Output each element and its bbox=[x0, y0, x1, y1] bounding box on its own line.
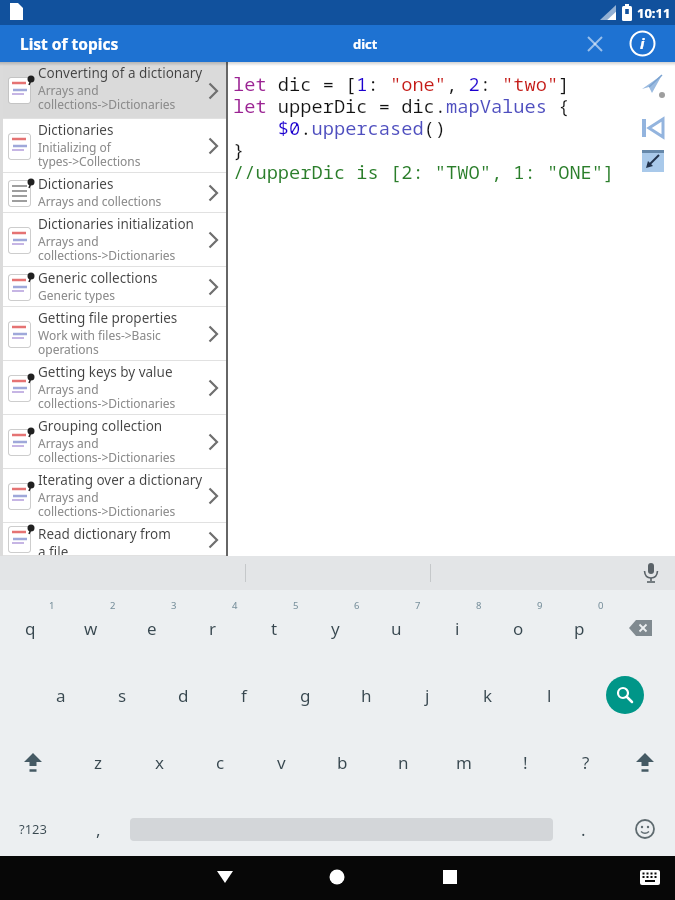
staticText: Getting file properties bbox=[38, 309, 178, 327]
button[interactable]: Converting of a dictionary bbox=[0, 62, 226, 119]
button[interactable]: ! bbox=[503, 745, 547, 779]
staticText: g bbox=[300, 684, 311, 707]
staticText: 9 bbox=[537, 599, 543, 612]
button[interactable] bbox=[635, 753, 655, 772]
button[interactable] bbox=[329, 869, 345, 885]
button[interactable]: i bbox=[435, 611, 479, 645]
button[interactable]: Grouping collection bbox=[0, 415, 226, 469]
button[interactable]: n bbox=[381, 745, 425, 779]
button[interactable] bbox=[640, 870, 660, 885]
button[interactable]: Dictionaries initialization bbox=[0, 213, 226, 267]
button[interactable]: q bbox=[8, 611, 52, 645]
staticText: 8 bbox=[476, 599, 482, 612]
button[interactable]: ?123 bbox=[10, 812, 56, 846]
button[interactable]: a bbox=[39, 678, 83, 712]
staticText: Iterating over a dictionary bbox=[38, 471, 203, 489]
button[interactable]: p bbox=[557, 611, 601, 645]
button[interactable]: Read dictionary from a file bbox=[0, 523, 226, 556]
button[interactable]: i bbox=[629, 30, 656, 57]
staticText: 4 bbox=[232, 599, 238, 612]
button[interactable]: w bbox=[69, 611, 113, 645]
button[interactable]: b bbox=[320, 745, 364, 779]
staticText: Arrays and collections->Dictionaries bbox=[38, 82, 176, 113]
button[interactable]: o bbox=[496, 611, 540, 645]
button[interactable]: Getting file properties bbox=[0, 307, 226, 361]
button[interactable]: Dictionaries bbox=[0, 119, 226, 173]
button[interactable] bbox=[217, 871, 233, 883]
staticText: s bbox=[118, 684, 127, 707]
staticText: t bbox=[271, 617, 278, 640]
button[interactable]: Iterating over a dictionary bbox=[0, 469, 226, 523]
staticText: Arrays and collections->Dictionaries bbox=[38, 435, 176, 466]
staticText: 1 bbox=[49, 599, 55, 612]
button[interactable] bbox=[23, 753, 43, 772]
button[interactable]: z bbox=[76, 745, 120, 779]
staticText: h bbox=[361, 684, 372, 707]
staticText: i bbox=[640, 33, 645, 53]
button[interactable]: f bbox=[222, 678, 266, 712]
button[interactable]: e bbox=[130, 611, 174, 645]
staticText: Arrays and collections->Dictionaries bbox=[38, 381, 176, 412]
button[interactable]: h bbox=[344, 678, 388, 712]
button[interactable]: m bbox=[442, 745, 486, 779]
staticText: 0 bbox=[598, 599, 604, 612]
staticText: Grouping collection bbox=[38, 417, 163, 435]
button[interactable] bbox=[643, 563, 659, 584]
staticText: m bbox=[456, 751, 472, 774]
staticText: 3 bbox=[171, 599, 177, 612]
button[interactable] bbox=[588, 37, 602, 51]
button[interactable]: g bbox=[283, 678, 327, 712]
button[interactable]: , bbox=[76, 812, 120, 846]
button[interactable]: Dictionaries bbox=[0, 173, 226, 213]
button[interactable]: Generic collections bbox=[0, 267, 226, 307]
button[interactable]: c bbox=[198, 745, 242, 779]
staticText: k bbox=[483, 684, 493, 707]
staticText: Dictionaries bbox=[38, 121, 114, 139]
button[interactable] bbox=[641, 117, 665, 139]
button[interactable]: j bbox=[405, 678, 449, 712]
staticText: Dictionaries initialization bbox=[38, 215, 194, 233]
staticText: u bbox=[391, 617, 402, 640]
button[interactable]: d bbox=[161, 678, 205, 712]
button[interactable] bbox=[642, 150, 665, 173]
button[interactable]: r bbox=[191, 611, 235, 645]
staticText: 5 bbox=[293, 599, 299, 612]
button[interactable]: . bbox=[561, 812, 605, 846]
staticText: q bbox=[25, 617, 36, 640]
button[interactable]: y bbox=[313, 611, 357, 645]
staticText: Generic types bbox=[38, 287, 115, 303]
button[interactable]: k bbox=[466, 678, 510, 712]
staticText: 7 bbox=[415, 599, 421, 612]
staticText: 10:11 bbox=[637, 4, 671, 21]
staticText: . bbox=[581, 818, 586, 841]
staticText: o bbox=[513, 617, 524, 640]
staticText: ! bbox=[523, 751, 528, 774]
staticText: Initializing of types->Collections bbox=[38, 139, 141, 170]
button[interactable] bbox=[606, 676, 644, 714]
button[interactable]: l bbox=[527, 678, 571, 712]
staticText: Work with files->Basic operations bbox=[38, 327, 161, 358]
button[interactable]: v bbox=[259, 745, 303, 779]
staticText: Generic collections bbox=[38, 269, 158, 287]
button[interactable]: Getting keys by value bbox=[0, 361, 226, 415]
button[interactable]: ? bbox=[564, 745, 608, 779]
button[interactable]: s bbox=[100, 678, 144, 712]
staticText: Arrays and collections bbox=[38, 193, 162, 209]
button[interactable] bbox=[629, 620, 653, 637]
staticText: List of topics bbox=[20, 33, 119, 54]
staticText: Converting of a dictionary bbox=[38, 64, 203, 82]
staticText: j bbox=[425, 684, 430, 707]
staticText: x bbox=[155, 751, 164, 774]
button[interactable]: x bbox=[137, 745, 181, 779]
button[interactable]: t bbox=[252, 611, 296, 645]
button[interactable]: u bbox=[374, 611, 418, 645]
staticText: i bbox=[455, 617, 460, 640]
staticText: y bbox=[331, 617, 340, 640]
button[interactable] bbox=[640, 73, 666, 99]
staticText: z bbox=[94, 751, 102, 774]
button[interactable] bbox=[635, 819, 655, 839]
staticText: f bbox=[241, 684, 247, 707]
staticText: r bbox=[209, 617, 217, 640]
